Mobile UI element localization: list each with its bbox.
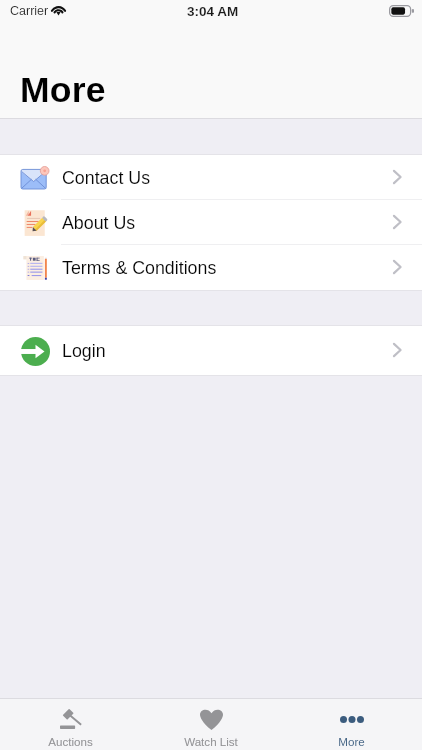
staticText: Auctions [48,735,93,748]
button[interactable]: Contact Us [0,155,422,200]
staticText: More [338,735,365,748]
button[interactable]: About Us [0,200,422,245]
staticText: Watch List [184,735,238,748]
staticText: Contact Us [62,168,151,188]
staticText: About Us [62,213,136,233]
button[interactable]: Watch List [140,699,281,750]
button[interactable]: Terms & Conditions [0,245,422,290]
staticText: 3:04 AM [187,4,239,19]
staticText: Login [62,341,106,361]
button[interactable]: Login [0,326,422,375]
button[interactable]: Auctions [0,699,140,750]
staticText: More [20,70,106,110]
staticText: Terms & Conditions [62,258,217,278]
staticText: Carrier [10,4,49,18]
button[interactable]: More [281,699,422,750]
